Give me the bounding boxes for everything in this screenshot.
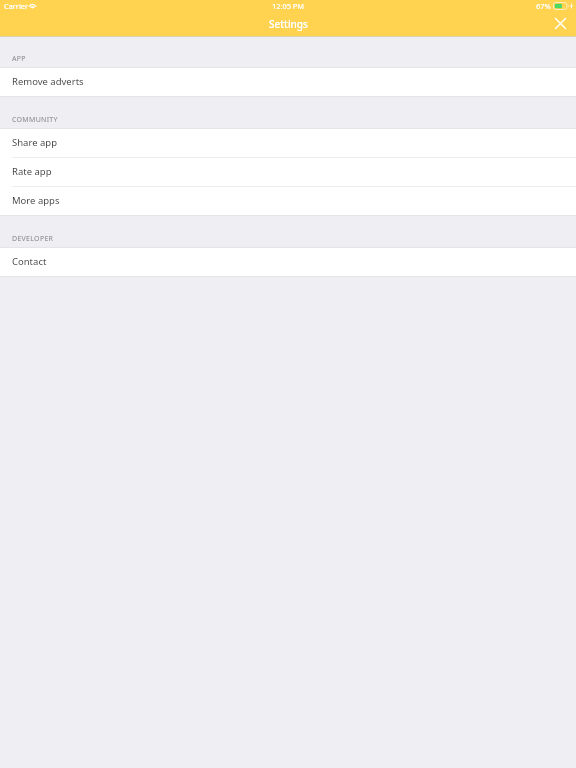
- staticText: COMMUNITY: [12, 115, 58, 125]
- button[interactable]: Rate app: [0, 158, 576, 186]
- staticText: Settings: [269, 17, 308, 31]
- button[interactable]: Remove adverts: [0, 68, 576, 96]
- staticText: 67%: [536, 1, 551, 11]
- staticText: Share app: [12, 136, 57, 149]
- staticText: More apps: [12, 194, 60, 207]
- staticText: Remove adverts: [12, 75, 84, 88]
- staticText: DEVELOPER: [12, 234, 54, 244]
- button[interactable]: Share app: [0, 129, 576, 157]
- button[interactable]: Contact: [0, 248, 576, 276]
- staticText: 12:05 PM: [272, 1, 304, 11]
- staticText: Contact: [12, 255, 47, 268]
- staticText: Carrier: [4, 1, 29, 11]
- button[interactable]: Close: [549, 12, 572, 35]
- staticText: Rate app: [12, 165, 52, 178]
- button[interactable]: More apps: [0, 187, 576, 215]
- staticText: APP: [12, 54, 26, 64]
